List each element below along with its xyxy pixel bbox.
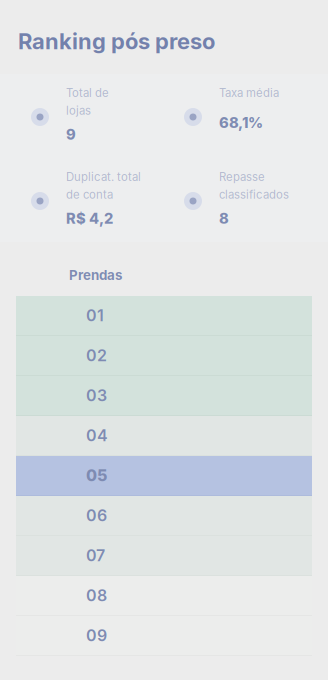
staticText: 8 [219, 209, 229, 227]
staticText: R$ 4,2 [66, 209, 113, 227]
button[interactable]: Taxa média [164, 74, 328, 158]
staticText: 9 [66, 125, 76, 143]
staticText: de conta [66, 188, 113, 201]
staticText: Duplicat. total [66, 170, 141, 184]
button[interactable]: Repasse [164, 158, 328, 242]
button[interactable]: 07 [16, 536, 312, 576]
button[interactable]: 08 [16, 576, 312, 616]
staticText: 01 [86, 306, 104, 325]
staticText: classificados [219, 188, 289, 201]
button[interactable]: 02 [16, 336, 312, 376]
staticText: 08 [86, 586, 107, 605]
staticText: 04 [86, 426, 108, 445]
staticText: 02 [86, 346, 107, 365]
staticText: Taxa média [219, 86, 279, 100]
button[interactable]: Duplicat. total [0, 158, 164, 242]
staticText: 06 [86, 506, 107, 525]
button[interactable]: Total de [0, 74, 164, 158]
button[interactable]: 09 [16, 616, 312, 656]
button[interactable]: 03 [16, 376, 312, 416]
staticText: Total de [66, 86, 109, 100]
staticText: 09 [86, 626, 107, 645]
button[interactable]: 04 [16, 416, 312, 456]
staticText: Ranking pós preso [18, 28, 215, 55]
staticText: Prendas [69, 267, 122, 283]
staticText: 03 [86, 386, 107, 405]
staticText: 05 [86, 466, 107, 485]
staticText: 07 [86, 546, 105, 565]
staticText: lojas [66, 104, 91, 117]
staticText: 68,1% [219, 114, 263, 131]
button[interactable]: 05 [16, 456, 312, 496]
button[interactable]: 01 [16, 296, 312, 336]
button[interactable]: 06 [16, 496, 312, 536]
staticText: Repasse [219, 170, 265, 184]
